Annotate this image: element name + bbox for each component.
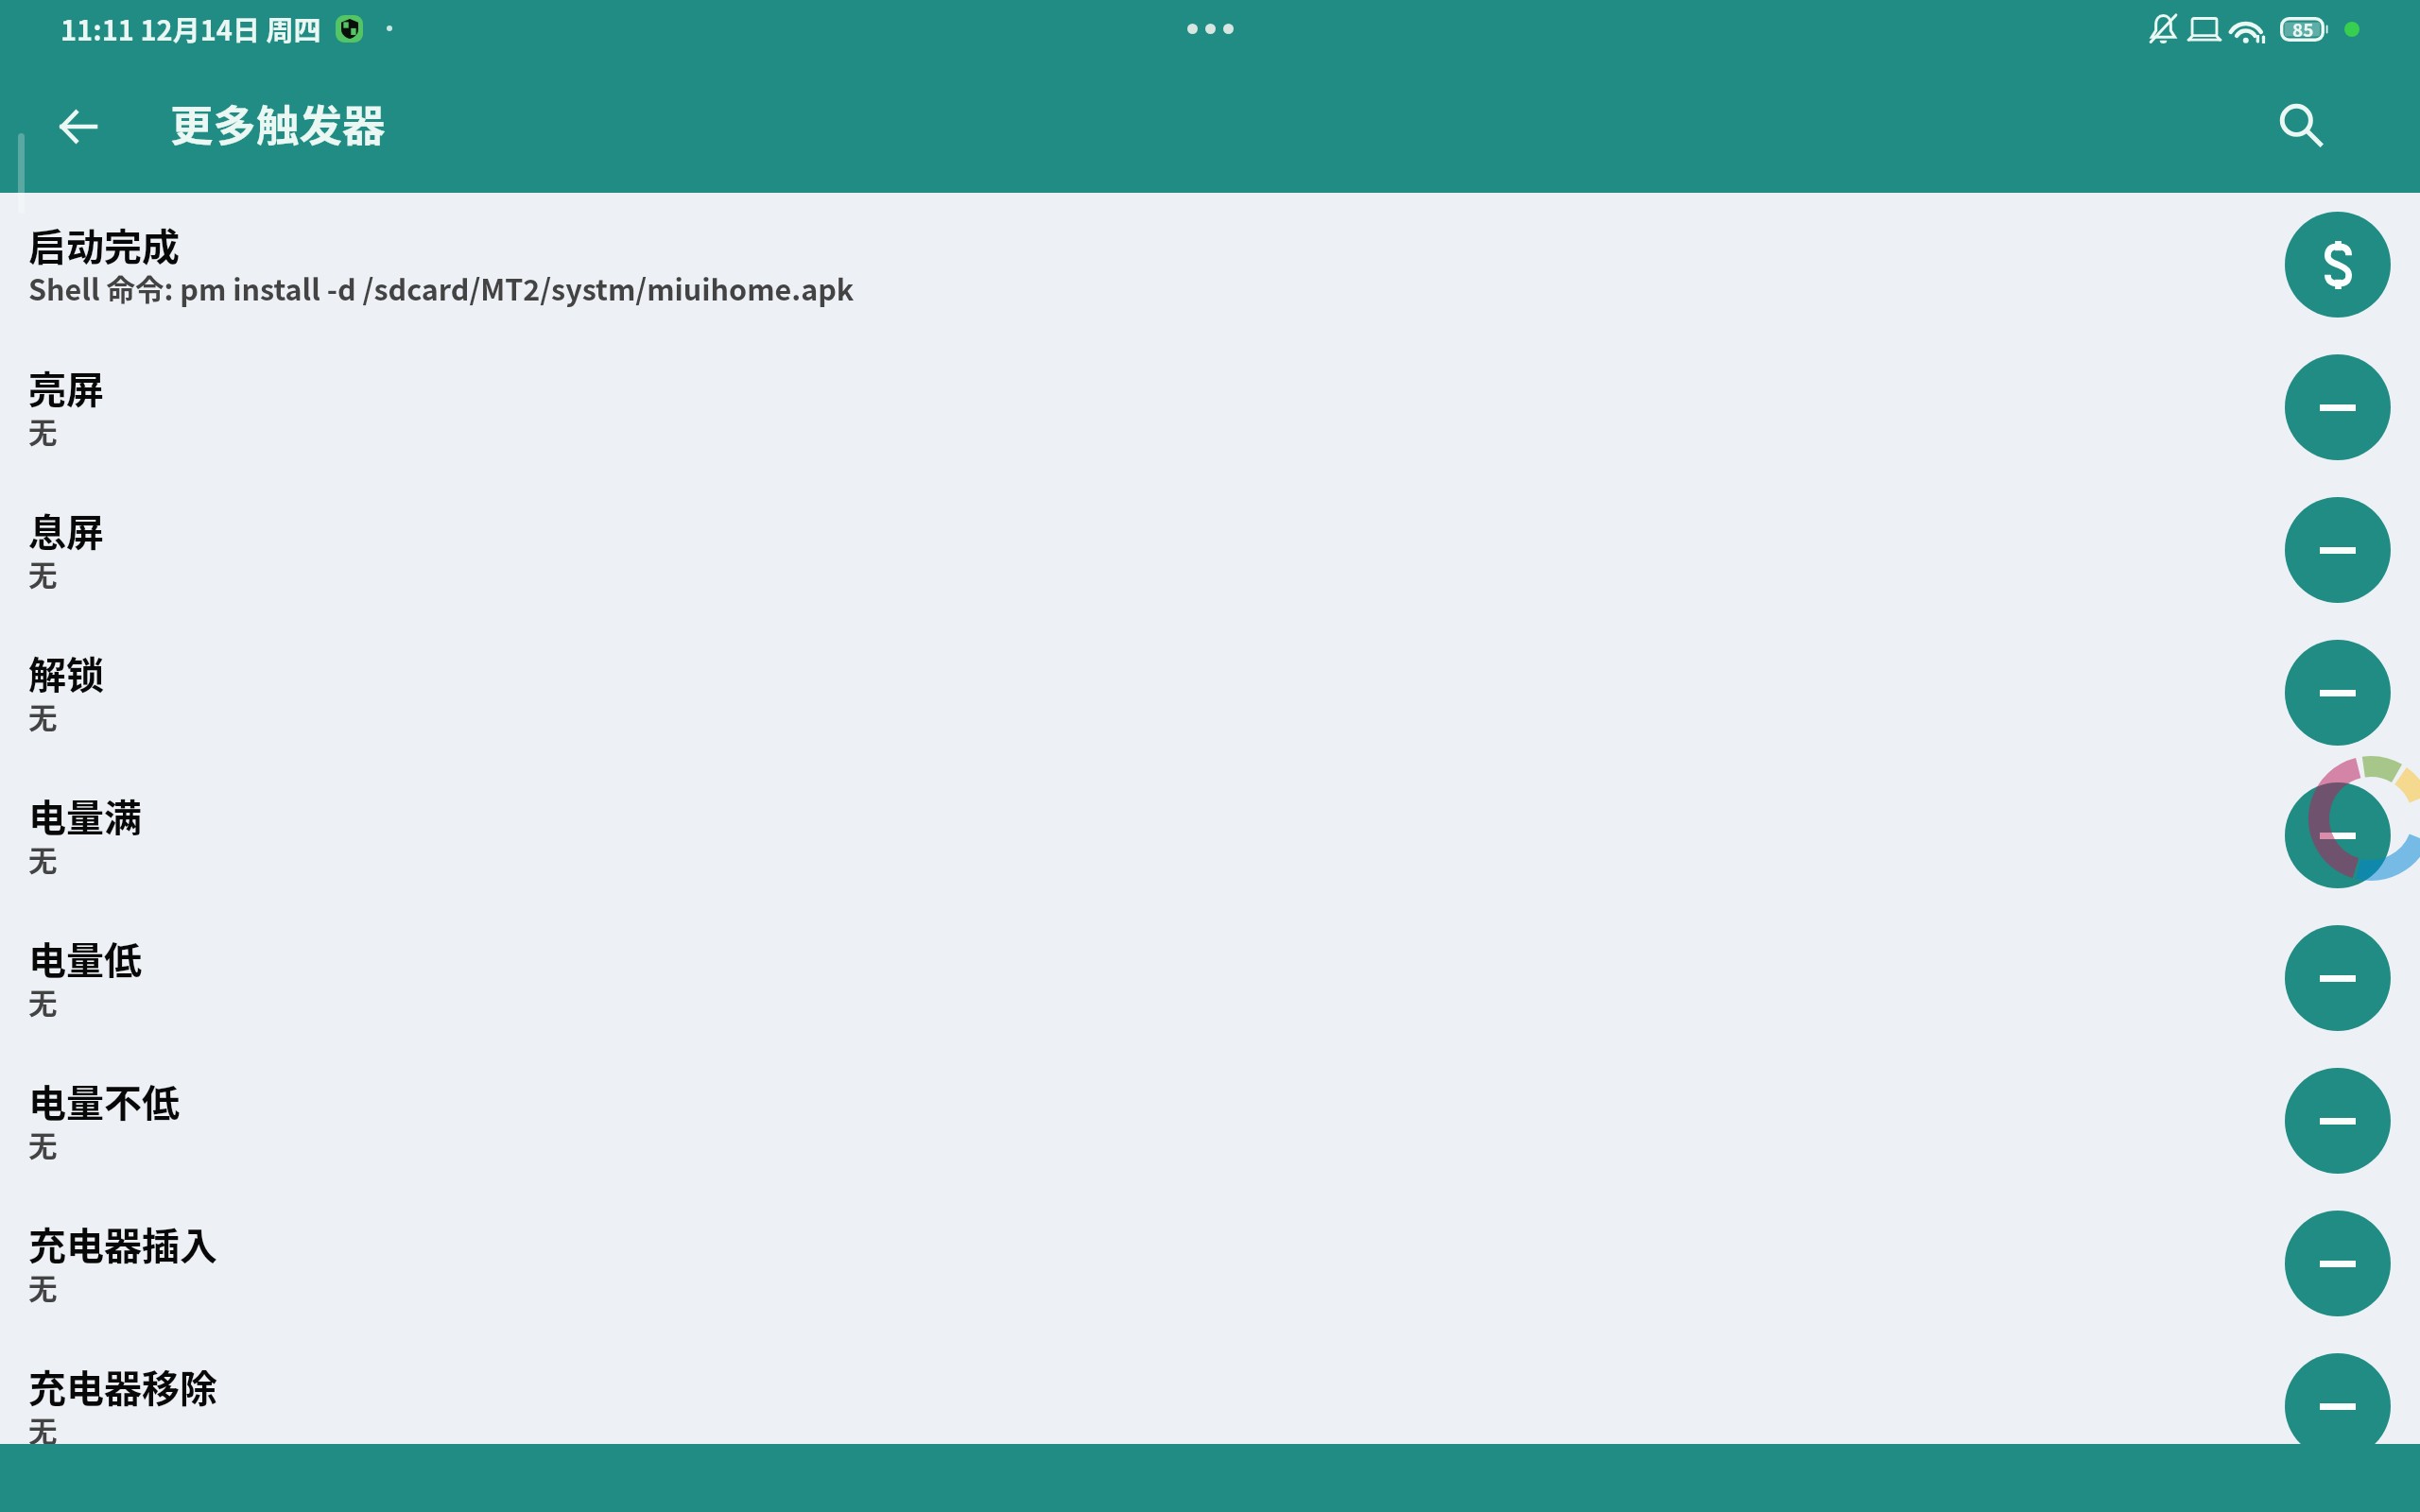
staticText: 无	[28, 838, 58, 880]
staticText: 无	[28, 696, 58, 737]
staticText: 无	[28, 1409, 58, 1451]
button[interactable]: 充电器插入	[0, 1192, 2420, 1334]
staticText: 息屏	[28, 503, 104, 558]
button[interactable]: Remove trigger	[2285, 497, 2391, 603]
staticText: 无	[28, 1266, 58, 1308]
staticText: 电量满	[28, 788, 142, 843]
staticText: 更多触发器	[170, 92, 386, 154]
button[interactable]: Remove trigger	[2285, 1353, 2391, 1459]
button[interactable]: Search	[2260, 84, 2345, 169]
staticText: 电量低	[28, 931, 142, 986]
button[interactable]: 电量不低	[0, 1049, 2420, 1192]
button[interactable]: 电量低	[0, 906, 2420, 1049]
staticText: 85	[2292, 16, 2314, 41]
staticText: 解锁	[28, 645, 104, 700]
button[interactable]: 亮屏	[0, 335, 2420, 478]
staticText: 11:11 12月14日 周四	[60, 9, 321, 48]
staticText: 启动完成	[28, 217, 180, 272]
button[interactable]: Run shell command	[2285, 212, 2391, 318]
button[interactable]: Remove trigger	[2285, 782, 2391, 888]
staticText: 电量不低	[28, 1074, 180, 1128]
staticText: Shell 命令: pm install -d /sdcard/MT2/syst…	[28, 267, 855, 309]
staticText: 无	[28, 553, 58, 594]
button[interactable]: 电量满	[0, 764, 2420, 906]
button[interactable]: Back	[35, 84, 120, 169]
button[interactable]: Remove trigger	[2285, 354, 2391, 460]
button[interactable]: 启动完成	[0, 193, 2420, 335]
button[interactable]: Remove trigger	[2285, 640, 2391, 746]
staticText: 充电器移除	[28, 1359, 217, 1414]
staticText: 无	[28, 410, 58, 452]
staticText: 亮屏	[28, 360, 104, 415]
button[interactable]: Remove trigger	[2285, 925, 2391, 1031]
staticText: 充电器插入	[28, 1216, 217, 1271]
staticText: 无	[28, 981, 58, 1022]
button[interactable]: 息屏	[0, 478, 2420, 621]
button[interactable]: 解锁	[0, 621, 2420, 764]
button[interactable]: Remove trigger	[2285, 1068, 2391, 1174]
button[interactable]: Remove trigger	[2285, 1211, 2391, 1316]
button[interactable]: 充电器移除	[0, 1334, 2420, 1477]
staticText: 无	[28, 1124, 58, 1165]
